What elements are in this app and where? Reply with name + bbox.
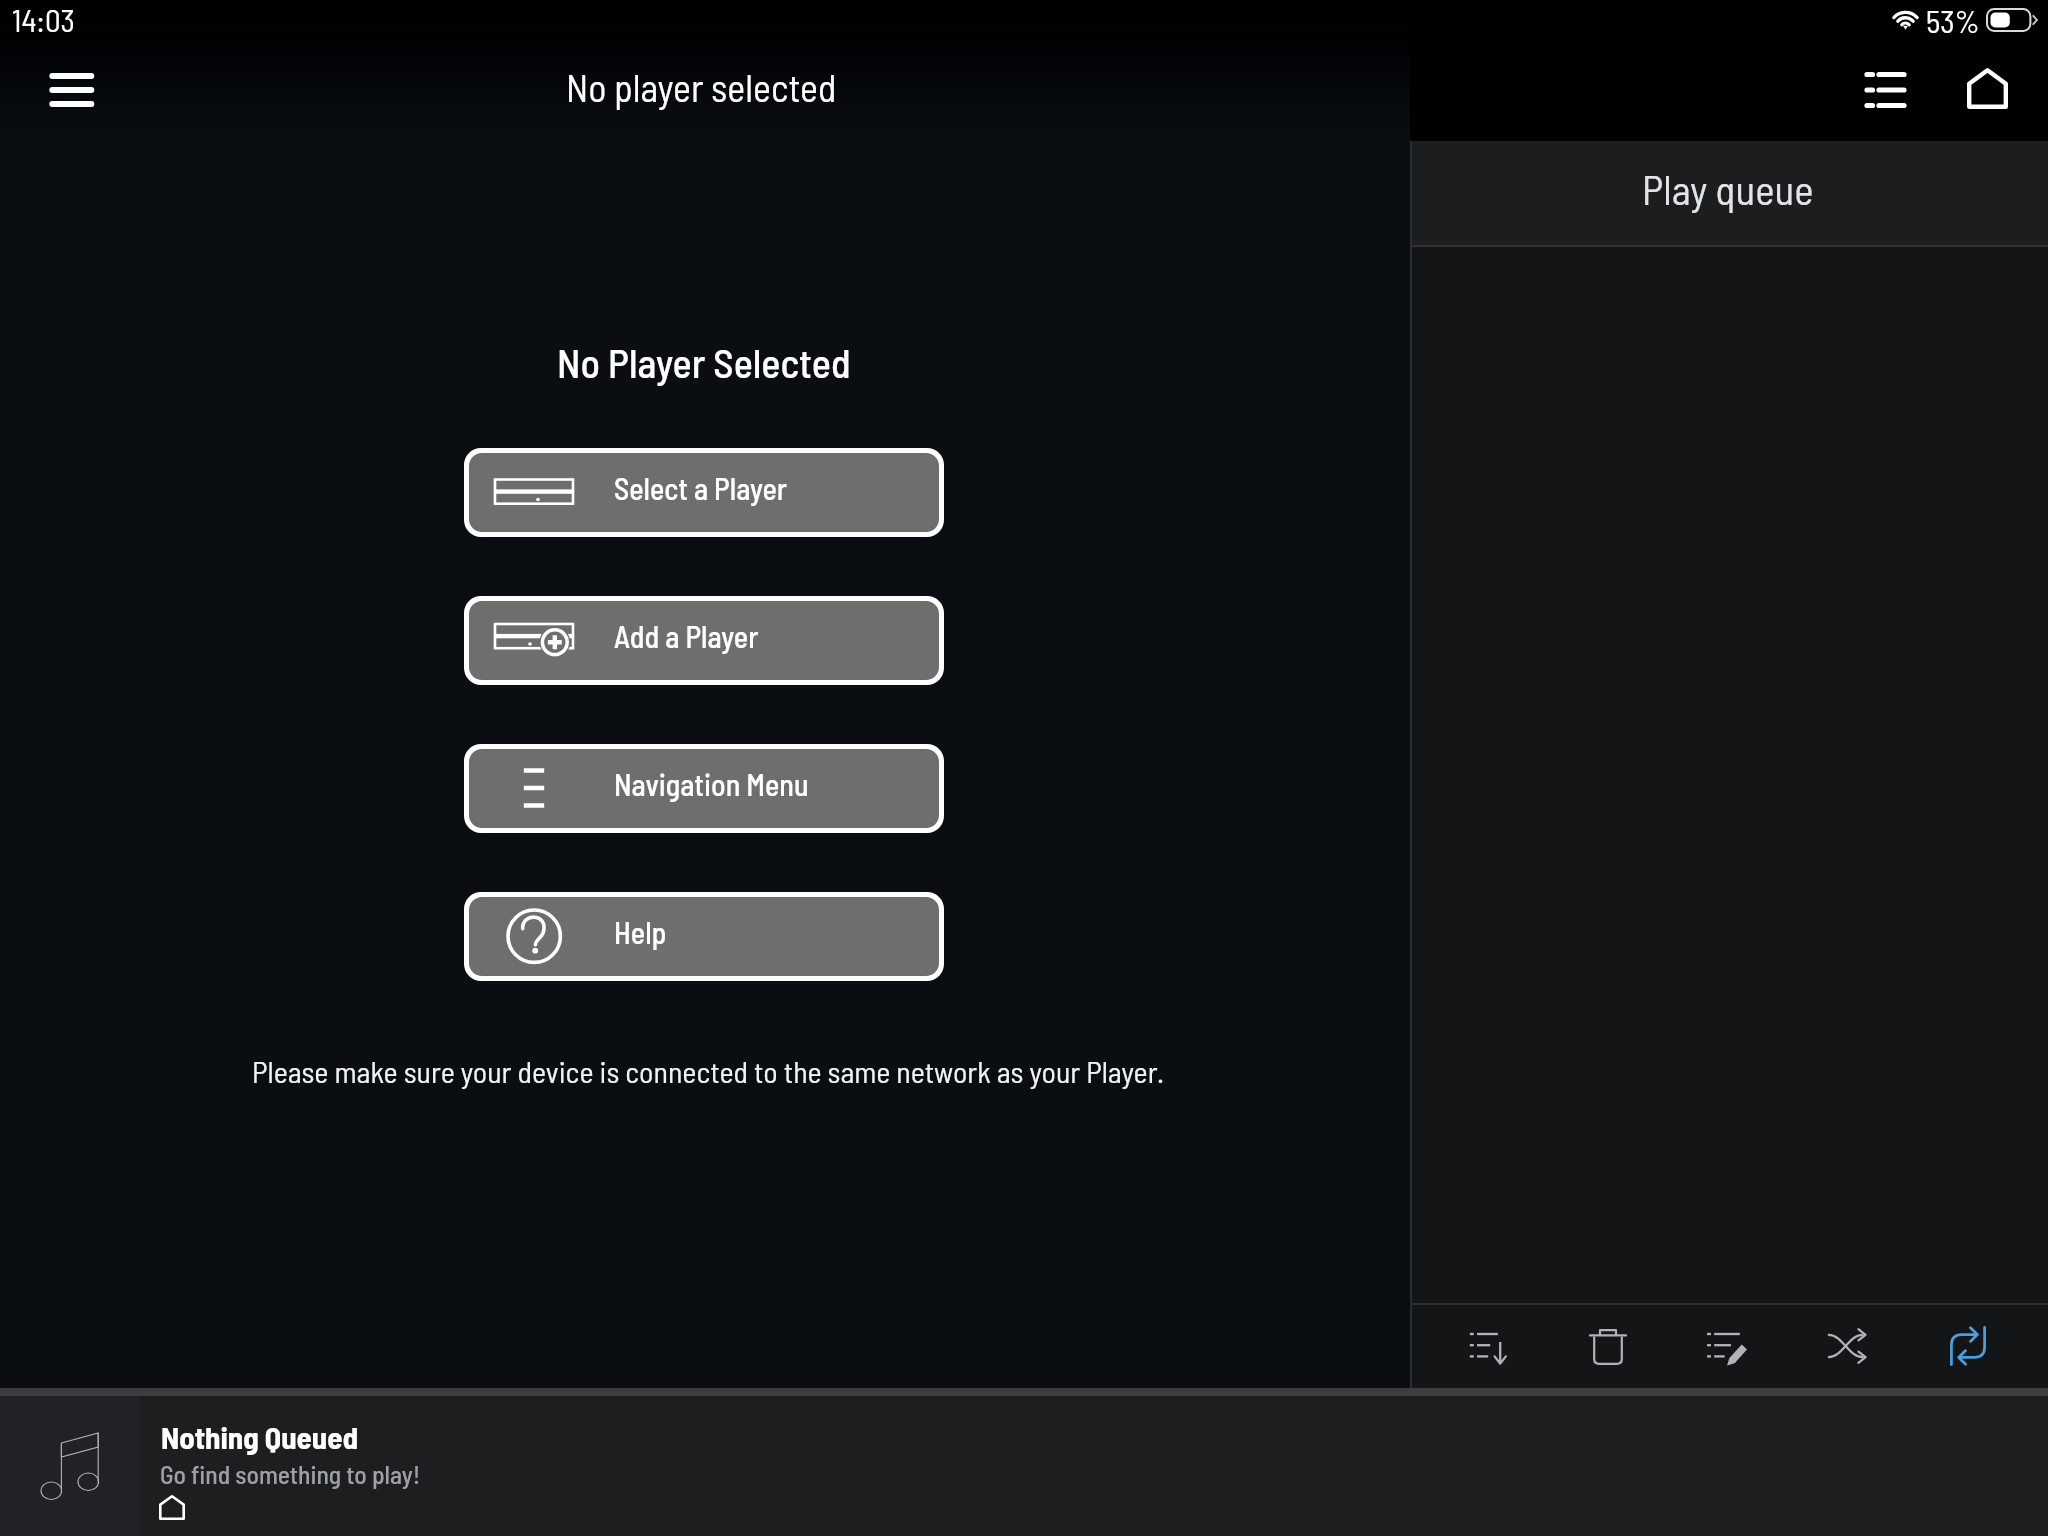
button[interactable]: Clear play queue [1571, 1309, 1645, 1383]
staticText: Please make sure your device is connecte… [252, 1053, 1165, 1089]
button[interactable]: Show play queue [1851, 56, 1919, 124]
button[interactable]: Nothing Queued [0, 1396, 2048, 1536]
staticText: Navigation Menu [614, 766, 809, 802]
button[interactable]: Add a Player [464, 596, 944, 685]
button[interactable]: Help [464, 892, 944, 981]
staticText: 14:03 [12, 1, 75, 38]
staticText: Nothing Queued [161, 1418, 359, 1455]
staticText: 53% [1926, 2, 1980, 39]
button[interactable]: Sort play queue [1452, 1309, 1526, 1383]
staticText: Play queue [1642, 164, 1814, 213]
staticText: Select a Player [614, 470, 788, 506]
staticText: Go find something to play! [160, 1458, 421, 1489]
staticText: No player selected [566, 64, 837, 110]
button[interactable]: Repeat [1931, 1309, 2005, 1383]
button[interactable]: Home [143, 1486, 201, 1536]
staticText: No Player Selected [557, 338, 851, 386]
button[interactable]: Open navigation menu [40, 58, 104, 122]
button[interactable]: Shuffle [1811, 1309, 1885, 1383]
button[interactable]: Select a Player [464, 448, 944, 537]
button[interactable]: Edit play queue [1690, 1309, 1764, 1383]
button[interactable]: Home [1953, 54, 2021, 122]
staticText: Add a Player [614, 618, 759, 654]
button[interactable]: Navigation Menu [464, 744, 944, 833]
staticText: Help [614, 914, 667, 950]
